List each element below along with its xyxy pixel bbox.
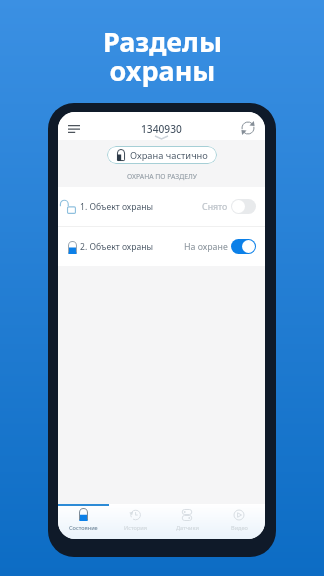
staticText: 2. Объект охраны <box>80 241 154 253</box>
staticText: Разделы охраны <box>103 23 222 89</box>
staticText: Датчики <box>176 524 199 532</box>
button[interactable]: Датчики <box>161 504 213 539</box>
button[interactable]: Refresh <box>238 112 265 140</box>
staticText: История <box>124 524 147 532</box>
button[interactable]: Menu <box>58 112 85 140</box>
staticText: На охране <box>184 241 228 253</box>
staticText: 1340930 <box>141 122 182 136</box>
button[interactable]: Состояние <box>58 504 109 539</box>
button[interactable]: Disarmed <box>231 199 256 214</box>
button[interactable]: Видео <box>213 504 265 539</box>
button[interactable]: Armed <box>231 239 256 254</box>
button[interactable]: 1. Объект охраны <box>58 187 265 226</box>
staticText: 1. Объект охраны <box>80 201 154 213</box>
button[interactable]: Охрана частично <box>107 146 217 164</box>
staticText: ОХРАНА ПО РАЗДЕЛУ <box>127 172 197 181</box>
staticText: Видео <box>231 524 248 532</box>
button[interactable]: История <box>109 504 161 539</box>
staticText: Снято <box>202 201 228 213</box>
button[interactable]: 2. Объект охраны <box>58 227 265 266</box>
staticText: Состояние <box>69 524 98 532</box>
staticText: Охрана частично <box>130 149 208 162</box>
button[interactable]: 1340930 <box>141 122 182 139</box>
